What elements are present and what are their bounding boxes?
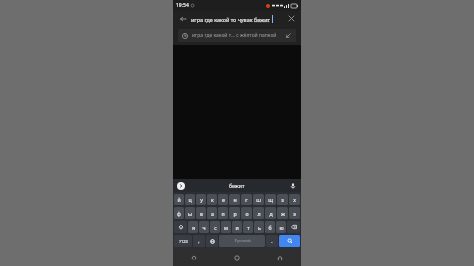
button[interactable]: , <box>193 235 205 247</box>
button[interactable]: а <box>207 207 217 219</box>
staticText: с <box>214 224 217 231</box>
button[interactable]: ф <box>174 207 184 219</box>
button[interactable]: Shift <box>174 221 187 233</box>
button[interactable]: в <box>196 207 206 219</box>
button[interactable]: к <box>207 194 217 205</box>
button[interactable]: й <box>174 194 184 205</box>
button[interactable]: Back <box>173 249 215 266</box>
button[interactable]: Insert suggestion <box>285 32 292 39</box>
button[interactable]: Русский <box>219 235 265 247</box>
staticText: в <box>200 210 203 217</box>
button[interactable]: Search <box>279 235 300 247</box>
button[interactable]: у <box>196 194 206 205</box>
staticText: з <box>281 196 284 203</box>
button[interactable]: Clear <box>286 13 297 24</box>
button[interactable]: ?123 <box>174 235 192 247</box>
staticText: игра где какой т... с жёлтой папкой <box>192 32 283 39</box>
staticText: я <box>192 224 195 231</box>
button[interactable]: з <box>277 194 288 205</box>
button[interactable]: ж <box>277 207 288 219</box>
button[interactable]: д <box>265 207 276 219</box>
button[interactable]: ы <box>185 207 195 219</box>
staticText: а <box>211 210 214 217</box>
staticText: о <box>245 210 249 217</box>
staticText: ?123 <box>179 239 188 244</box>
button[interactable]: б <box>265 221 275 233</box>
staticText: у <box>200 196 203 203</box>
staticText: Русский <box>234 238 251 244</box>
button[interactable]: е <box>218 194 228 205</box>
staticText: . <box>271 238 273 245</box>
button[interactable]: о <box>241 207 252 219</box>
staticText: бежит <box>254 16 271 23</box>
button[interactable]: игра где какой т... с жёлтой папкой <box>178 29 296 42</box>
staticText: ю <box>279 224 284 231</box>
button[interactable]: и <box>232 221 242 233</box>
staticText: ь <box>258 224 261 231</box>
button[interactable]: я <box>188 221 198 233</box>
staticText: , <box>198 238 200 245</box>
staticText: к <box>211 196 214 203</box>
button[interactable]: ь <box>254 221 264 233</box>
button[interactable]: ц <box>185 194 195 205</box>
staticText: ф <box>177 210 181 217</box>
button[interactable]: л <box>253 207 264 219</box>
button[interactable]: х <box>289 194 300 205</box>
button[interactable]: р <box>229 207 240 219</box>
button[interactable]: Home <box>215 249 258 266</box>
button[interactable]: э <box>289 207 300 219</box>
staticText: н <box>233 196 237 203</box>
button[interactable]: Change language <box>206 235 218 247</box>
staticText: г <box>245 196 248 203</box>
staticText: д <box>269 210 273 217</box>
staticText: е <box>222 196 225 203</box>
staticText: бежит <box>229 182 245 189</box>
button[interactable]: ю <box>276 221 286 233</box>
button[interactable]: м <box>221 221 231 233</box>
button[interactable]: с <box>210 221 220 233</box>
staticText: ш <box>256 196 261 203</box>
button[interactable]: т <box>243 221 253 233</box>
staticText: ц <box>188 196 192 203</box>
button[interactable]: г <box>241 194 252 205</box>
button[interactable]: бежит <box>185 179 288 192</box>
staticText: й <box>177 196 181 203</box>
button[interactable]: Voice input <box>288 181 297 190</box>
staticText: игра где какой то чувак <box>191 16 254 23</box>
staticText: п <box>221 210 225 217</box>
button[interactable]: Recent apps <box>258 249 301 266</box>
button[interactable]: Expand suggestions <box>177 182 185 190</box>
staticText: т <box>247 224 250 231</box>
button[interactable]: щ <box>265 194 276 205</box>
button[interactable]: ч <box>199 221 209 233</box>
staticText: ж <box>281 210 285 217</box>
button[interactable]: Back <box>177 13 188 24</box>
staticText: м <box>224 224 228 231</box>
button[interactable]: Backspace <box>287 221 300 233</box>
staticText: х <box>293 196 296 203</box>
button[interactable]: н <box>229 194 240 205</box>
staticText: б <box>268 224 272 231</box>
staticText: щ <box>268 196 273 203</box>
staticText: ы <box>188 210 192 217</box>
staticText: 19:54 <box>176 2 189 9</box>
staticText: э <box>293 210 296 217</box>
staticText: р <box>233 210 237 217</box>
staticText: и <box>235 224 239 231</box>
button[interactable]: ш <box>253 194 264 205</box>
staticText: ч <box>202 224 206 231</box>
button[interactable]: п <box>218 207 228 219</box>
button[interactable]: . <box>266 235 278 247</box>
staticText: л <box>257 210 261 217</box>
